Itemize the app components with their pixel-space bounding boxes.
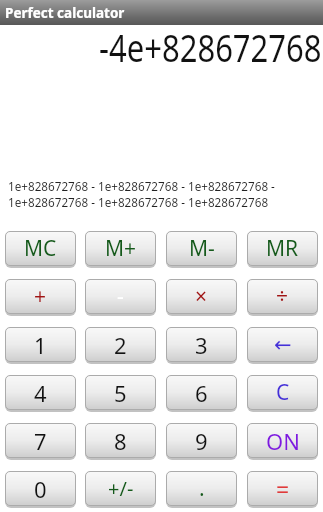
- button[interactable]: =: [247, 471, 318, 506]
- staticText: 5: [114, 378, 127, 408]
- staticText: Perfect calculator: [5, 4, 125, 22]
- staticText: ÷: [276, 282, 289, 311]
- button[interactable]: MR: [247, 231, 318, 266]
- button[interactable]: 1: [5, 327, 76, 362]
- button[interactable]: ←: [247, 327, 318, 362]
- staticText: 8: [114, 426, 127, 456]
- button[interactable]: .: [166, 471, 237, 506]
- staticText: 4: [34, 378, 47, 408]
- button[interactable]: 7: [5, 423, 76, 458]
- staticText: 1e+828672768 - 1e+828672768 - 1e+8286727…: [8, 178, 275, 194]
- staticText: =: [276, 473, 290, 504]
- button[interactable]: MC: [5, 231, 76, 266]
- button[interactable]: 3: [166, 327, 237, 362]
- staticText: 0: [34, 474, 47, 504]
- staticText: 1: [34, 330, 47, 360]
- button[interactable]: C: [247, 375, 318, 410]
- staticText: .: [199, 474, 205, 503]
- button[interactable]: ÷: [247, 279, 318, 314]
- button[interactable]: 5: [85, 375, 156, 410]
- button[interactable]: -: [85, 279, 156, 314]
- staticText: ←: [274, 333, 292, 357]
- button[interactable]: M+: [85, 231, 156, 266]
- staticText: 1e+828672768 - 1e+828672768 - 1e+8286727…: [8, 194, 269, 210]
- staticText: 6: [195, 378, 208, 408]
- staticText: 3: [195, 330, 208, 360]
- button[interactable]: 8: [85, 423, 156, 458]
- staticText: MR: [266, 234, 299, 263]
- staticText: ON: [266, 426, 300, 456]
- button[interactable]: 6: [166, 375, 237, 410]
- staticText: +: [34, 282, 47, 311]
- button[interactable]: ×: [166, 279, 237, 314]
- staticText: MC: [24, 234, 57, 263]
- staticText: -4e+828672768: [99, 21, 322, 73]
- button[interactable]: ON: [247, 423, 318, 458]
- staticText: 7: [34, 426, 47, 456]
- button[interactable]: +/-: [85, 471, 156, 506]
- button[interactable]: 9: [166, 423, 237, 458]
- staticText: M+: [105, 234, 137, 263]
- staticText: M-: [189, 234, 215, 263]
- staticText: +/-: [108, 475, 134, 502]
- button[interactable]: 0: [5, 471, 76, 506]
- staticText: C: [276, 378, 290, 407]
- button[interactable]: M-: [166, 231, 237, 266]
- staticText: 9: [195, 426, 208, 456]
- button[interactable]: +: [5, 279, 76, 314]
- staticText: -: [117, 282, 124, 311]
- button[interactable]: 2: [85, 327, 156, 362]
- staticText: ×: [195, 282, 208, 311]
- button[interactable]: 4: [5, 375, 76, 410]
- staticText: 2: [114, 330, 127, 360]
